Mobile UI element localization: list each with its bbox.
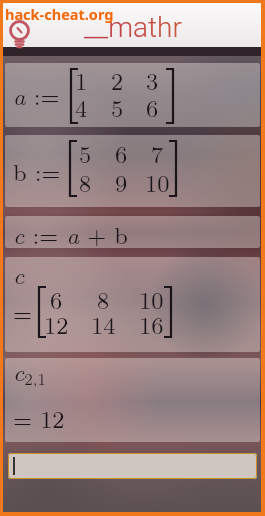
staticText: 8 (79, 166, 92, 198)
staticText: 6 (50, 283, 63, 315)
staticText: 14 (91, 308, 116, 340)
staticText: 4 (75, 91, 88, 123)
staticText: c := a + b (13, 218, 128, 248)
staticText: = 12 (13, 402, 65, 434)
button[interactable]: a := (5, 63, 260, 127)
staticText: 2 (111, 64, 124, 96)
staticText: 3 (146, 64, 159, 96)
staticText: a := (13, 79, 68, 112)
staticText: 6 (146, 91, 159, 123)
staticText: 6 (115, 137, 128, 169)
staticText: 10 (139, 283, 164, 315)
staticText: 1 (75, 64, 88, 96)
staticText: 10 (145, 166, 170, 198)
staticText: __mathr (84, 11, 182, 44)
staticText: c2,1 (13, 358, 47, 387)
staticText: b := (13, 155, 69, 188)
button[interactable] (8, 453, 257, 479)
staticText: 9 (115, 166, 128, 198)
staticText: 7 (151, 137, 164, 169)
button[interactable]: c (5, 257, 260, 352)
staticText: 16 (139, 308, 164, 340)
staticText: hack-cheat.org (5, 4, 114, 24)
staticText: 8 (97, 283, 110, 315)
button[interactable]: c2,1 (5, 358, 260, 442)
staticText: 5 (111, 91, 124, 123)
staticText: 5 (79, 137, 92, 169)
button[interactable]: __mathr (0, 0, 265, 47)
button[interactable]: b := (5, 135, 260, 207)
button[interactable]: c := a + b (5, 216, 260, 248)
staticText: = (13, 296, 32, 328)
staticText: c (13, 258, 25, 290)
staticText: 12 (44, 308, 69, 340)
